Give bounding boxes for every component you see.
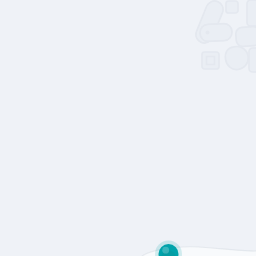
button[interactable]: Accent action: [0, 0, 256, 256]
other: Decorative shapes: [0, 0, 256, 256]
